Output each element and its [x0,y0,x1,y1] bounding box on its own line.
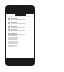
button[interactable] [6,28,34,32]
button[interactable] [6,25,34,29]
button[interactable] [6,17,34,21]
button[interactable] [6,21,34,25]
button[interactable] [6,32,34,36]
